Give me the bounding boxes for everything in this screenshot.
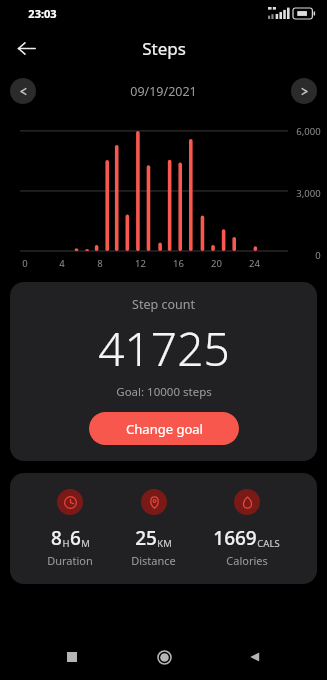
staticText: M	[81, 537, 90, 550]
button[interactable]: Recent apps	[52, 637, 92, 677]
staticText: 8	[51, 525, 62, 551]
staticText: 6	[70, 525, 81, 551]
staticText: 0	[22, 257, 28, 270]
staticText: 20	[211, 257, 222, 270]
button[interactable]: Home	[144, 637, 184, 677]
staticText: 16	[173, 257, 184, 270]
staticText: H	[62, 537, 70, 550]
staticText: 24	[249, 257, 260, 270]
button[interactable]: Change goal	[89, 412, 239, 445]
staticText: 09/19/2021	[130, 83, 197, 100]
button[interactable]: Back	[8, 30, 44, 66]
staticText: 25	[135, 525, 157, 551]
staticText: 12	[135, 257, 146, 270]
staticText: Step count	[132, 296, 195, 313]
button[interactable]: Previous day	[10, 78, 36, 104]
staticText: Steps	[142, 37, 186, 60]
staticText: Change goal	[126, 420, 203, 438]
staticText: 8	[97, 257, 103, 270]
staticText: KM	[157, 537, 172, 550]
button[interactable]: Back	[235, 637, 275, 677]
staticText: 23:03	[28, 6, 57, 21]
staticText: Calories	[226, 553, 268, 568]
staticText: 0	[315, 249, 321, 262]
staticText: Goal: 10000 steps	[116, 384, 212, 400]
staticText: Distance	[131, 553, 176, 568]
staticText: 1669	[213, 525, 257, 551]
staticText: CALS	[257, 537, 280, 550]
staticText: 3,000	[296, 187, 321, 200]
staticText: 4	[59, 257, 65, 270]
staticText: Duration	[47, 553, 93, 568]
staticText: 41725	[98, 317, 230, 380]
staticText: 6,000	[296, 125, 321, 138]
button[interactable]: Next day	[291, 78, 317, 104]
